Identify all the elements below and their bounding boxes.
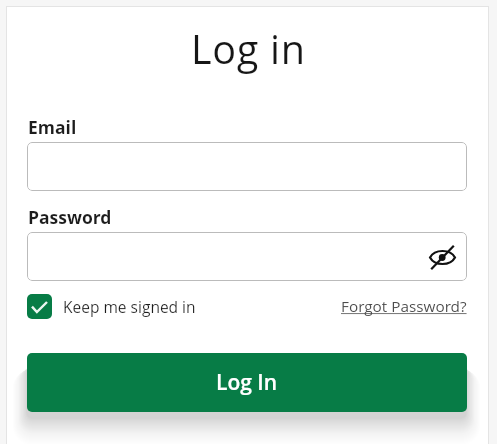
button[interactable]: Show password [27, 232, 467, 281]
staticText: Keep me signed in [63, 296, 196, 317]
staticText: Password [28, 205, 112, 229]
button[interactable]: Keep me signed in [27, 294, 196, 319]
staticText: Log In [216, 368, 278, 397]
button[interactable] [27, 142, 467, 191]
button[interactable]: Log In [27, 353, 467, 412]
button[interactable]: Forgot Password? [341, 296, 467, 317]
staticText: Email [28, 115, 77, 139]
staticText: Log in [191, 22, 306, 76]
button[interactable]: Show password [426, 241, 458, 273]
